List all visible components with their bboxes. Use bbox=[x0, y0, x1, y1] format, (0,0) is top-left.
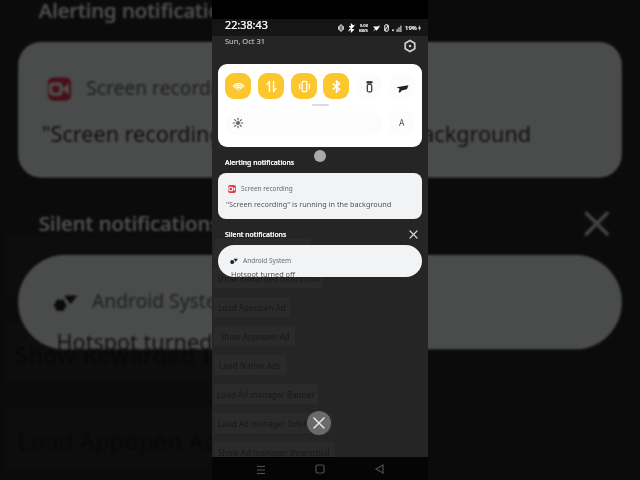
button[interactable]: Load Appopen Ad bbox=[6, 409, 231, 468]
staticText: Show Rewarded Ad bbox=[226, 244, 300, 255]
button[interactable]: Back bbox=[369, 459, 389, 479]
button[interactable]: Home bbox=[310, 459, 330, 479]
staticText: Show Rewarded Ad bbox=[42, 252, 261, 284]
staticText: Hotspot turned off bbox=[57, 326, 246, 349]
staticText: Silent notifications bbox=[39, 210, 222, 237]
button[interactable]: Clear all notifications bbox=[580, 207, 613, 237]
button[interactable]: Brightness bbox=[225, 111, 383, 135]
staticText: KB/S bbox=[359, 28, 368, 33]
staticText: Sun, Oct 31 bbox=[225, 36, 266, 46]
button[interactable]: Load Ad manager Interstitial bbox=[214, 413, 332, 433]
button[interactable]: Show Ad manager Interstitial bbox=[214, 442, 334, 462]
staticText: Load Ad manager Banner bbox=[217, 389, 315, 400]
staticText: Silent notifications bbox=[225, 230, 287, 239]
button[interactable]: Clear all notifications bbox=[408, 229, 419, 239]
staticText: Screen recording bbox=[241, 184, 293, 193]
staticText: Hotspot turned off bbox=[231, 269, 295, 277]
button[interactable]: Android System bbox=[218, 245, 422, 277]
staticText: Load Appopen Ad bbox=[218, 302, 286, 313]
staticText: Show Appopen Ad bbox=[220, 331, 290, 342]
staticText: Android System bbox=[92, 287, 237, 314]
staticText: 0.00 bbox=[360, 23, 368, 28]
button[interactable]: Recents bbox=[251, 459, 271, 479]
staticText: 22:38:43 bbox=[225, 17, 268, 32]
staticText: Alerting notifications bbox=[225, 158, 295, 167]
button[interactable]: Load Native Ads bbox=[214, 355, 286, 375]
button[interactable]: Show Rewarded Ad bbox=[6, 237, 293, 296]
staticText: Load Ad manager Interstitial bbox=[218, 418, 328, 429]
staticText: Show Rewarded Interstitial bbox=[217, 273, 320, 284]
button[interactable]: Quick setting bbox=[389, 73, 415, 99]
button[interactable]: Screen recording bbox=[218, 173, 422, 219]
button[interactable]: Show Appopen Ad bbox=[214, 326, 295, 346]
button[interactable]: Quick setting bbox=[225, 73, 251, 99]
button[interactable]: Quick setting bbox=[323, 73, 349, 99]
staticText: Show Rewarded Interstitial bbox=[15, 338, 320, 370]
staticText: Show Ad manager Interstitial bbox=[218, 447, 330, 458]
staticText: "Screen recording" is running in the bac… bbox=[226, 199, 392, 209]
button[interactable]: Load Appopen Ad bbox=[214, 297, 290, 317]
button[interactable]: Load Ad manager Banner bbox=[214, 384, 318, 404]
button[interactable]: Show Rewarded Ad bbox=[214, 239, 311, 259]
button[interactable]: Quick setting bbox=[356, 73, 382, 99]
staticText: 19% bbox=[405, 24, 417, 32]
button[interactable]: Close notification shade bbox=[307, 411, 331, 435]
staticText: Load Native Ads bbox=[219, 360, 281, 371]
button[interactable]: Show Rewarded Interstitial bbox=[214, 268, 322, 288]
staticText: A bbox=[399, 117, 405, 129]
staticText: Load Appopen Ad bbox=[18, 423, 219, 456]
staticText: Screen recording bbox=[86, 74, 240, 101]
button[interactable]: Show Rewarded Interstitial bbox=[6, 323, 326, 382]
button[interactable]: Auto brightness bbox=[389, 111, 415, 135]
button[interactable]: Settings bbox=[402, 38, 418, 54]
staticText: "Screen recording" is running in the bac… bbox=[42, 119, 533, 148]
staticText: Alerting notifications bbox=[39, 0, 246, 24]
button[interactable]: Screen recording bbox=[18, 42, 622, 178]
button[interactable]: Quick setting bbox=[258, 73, 284, 99]
button[interactable]: Android System bbox=[18, 255, 622, 349]
staticText: Android System bbox=[243, 256, 292, 265]
button[interactable]: Quick setting bbox=[291, 73, 317, 99]
